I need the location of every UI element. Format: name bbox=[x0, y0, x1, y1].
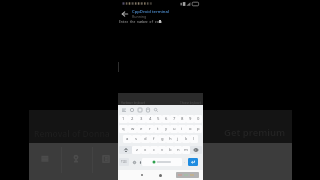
staticText: 2 bbox=[131, 116, 134, 122]
staticText: o bbox=[189, 126, 192, 132]
staticText: Running bbox=[132, 14, 147, 19]
staticText: d bbox=[144, 136, 147, 142]
button[interactable]: Home bbox=[156, 171, 164, 179]
staticText: a bbox=[126, 136, 129, 142]
button[interactable]: 1 bbox=[119, 115, 128, 123]
button[interactable]: a bbox=[123, 135, 132, 143]
button[interactable]: Voice input bbox=[137, 158, 144, 166]
button[interactable]: 5 bbox=[154, 115, 162, 123]
button[interactable]: c bbox=[150, 146, 158, 154]
staticText: Hardware keyboard bbox=[121, 101, 145, 105]
button[interactable]: o bbox=[186, 125, 194, 133]
staticText: c bbox=[153, 147, 156, 153]
button[interactable]: Navigate up bbox=[120, 9, 129, 18]
staticText: 5 bbox=[157, 116, 160, 122]
staticText: k bbox=[185, 136, 188, 142]
staticText: f bbox=[153, 136, 155, 142]
staticText: 7 bbox=[173, 116, 176, 122]
staticText: n bbox=[177, 147, 180, 153]
staticText: 3 bbox=[140, 116, 143, 122]
button[interactable]: 8 bbox=[178, 115, 186, 123]
staticText: CppDroid terminal bbox=[132, 9, 170, 15]
staticText: z bbox=[136, 147, 138, 153]
button[interactable]: s bbox=[132, 135, 141, 143]
button[interactable]: j bbox=[174, 135, 182, 143]
staticText: 8 bbox=[181, 116, 184, 122]
button[interactable]: Clipboard bbox=[144, 106, 151, 113]
staticText: v bbox=[161, 147, 164, 153]
button[interactable]: l bbox=[190, 135, 198, 143]
staticText: 1 bbox=[122, 116, 125, 122]
button[interactable]: u bbox=[170, 125, 178, 133]
button[interactable]: Search bbox=[152, 106, 159, 113]
staticText: g bbox=[161, 136, 164, 142]
button[interactable]: m bbox=[182, 146, 190, 154]
staticText: t bbox=[157, 126, 159, 132]
staticText: p bbox=[197, 126, 200, 132]
button[interactable]: 6 bbox=[162, 115, 170, 123]
button[interactable]: Person bbox=[67, 150, 85, 168]
staticText: . bbox=[184, 160, 185, 164]
button[interactable]: Emoji bbox=[131, 158, 138, 166]
staticText: l bbox=[193, 136, 195, 142]
button[interactable]: k bbox=[182, 135, 190, 143]
staticText: ?123 bbox=[121, 160, 127, 164]
staticText: m bbox=[184, 147, 188, 153]
button[interactable]: Enter bbox=[188, 158, 198, 166]
button[interactable]: Shift bbox=[119, 146, 132, 154]
button[interactable]: y bbox=[162, 125, 170, 133]
button[interactable]: q bbox=[119, 125, 128, 133]
button[interactable]: 2 bbox=[128, 115, 137, 123]
button[interactable]: List bbox=[36, 150, 54, 168]
button[interactable]: 3 bbox=[137, 115, 146, 123]
staticText: 9 bbox=[189, 116, 192, 122]
staticText: j bbox=[177, 136, 179, 142]
staticText: h bbox=[169, 136, 172, 142]
staticText: 6 bbox=[165, 116, 168, 122]
button[interactable]: g bbox=[158, 135, 166, 143]
button[interactable]: Stickers bbox=[128, 106, 135, 113]
button[interactable]: 9 bbox=[186, 115, 194, 123]
button[interactable]: 0 bbox=[194, 115, 202, 123]
button[interactable]: Recent apps bbox=[175, 171, 200, 179]
button[interactable]: Back bbox=[138, 171, 146, 179]
button[interactable]: b bbox=[166, 146, 174, 154]
button[interactable]: x bbox=[141, 146, 150, 154]
button[interactable]: Backspace bbox=[190, 146, 202, 154]
button[interactable]: ?123 bbox=[119, 158, 129, 166]
staticText: Enter the number of rows bbox=[119, 20, 163, 24]
button[interactable]: i bbox=[178, 125, 186, 133]
staticText: r bbox=[149, 126, 151, 132]
staticText: 4 bbox=[149, 116, 152, 122]
staticText: s bbox=[135, 136, 138, 142]
staticText: y bbox=[165, 126, 168, 132]
button[interactable]: f bbox=[150, 135, 158, 143]
button[interactable]: e bbox=[137, 125, 146, 133]
staticText: e bbox=[140, 126, 143, 132]
button[interactable]: n bbox=[174, 146, 182, 154]
button[interactable]: GIF bbox=[136, 106, 143, 113]
staticText: b bbox=[169, 147, 172, 153]
button[interactable]: Keyboard settings bbox=[120, 106, 127, 113]
staticText: w bbox=[131, 126, 135, 132]
staticText: q bbox=[122, 126, 125, 132]
button[interactable]: w bbox=[128, 125, 137, 133]
button[interactable]: p bbox=[194, 125, 202, 133]
staticText: 0 bbox=[197, 116, 200, 122]
button[interactable]: z bbox=[132, 146, 141, 154]
staticText: Get premium bbox=[224, 126, 286, 139]
button[interactable]: . bbox=[181, 158, 187, 166]
button[interactable]: r bbox=[146, 125, 154, 133]
button[interactable]: v bbox=[158, 146, 166, 154]
button[interactable]: 4 bbox=[146, 115, 154, 123]
staticText: x bbox=[144, 147, 147, 153]
button[interactable]: 7 bbox=[170, 115, 178, 123]
staticText: u bbox=[173, 126, 176, 132]
button[interactable]: d bbox=[141, 135, 150, 143]
button[interactable]: t bbox=[154, 125, 162, 133]
button[interactable]: h bbox=[166, 135, 174, 143]
staticText: Choose keyboard bbox=[180, 101, 202, 105]
button[interactable]: Space bbox=[142, 158, 182, 166]
button[interactable]: Article bbox=[97, 150, 115, 168]
